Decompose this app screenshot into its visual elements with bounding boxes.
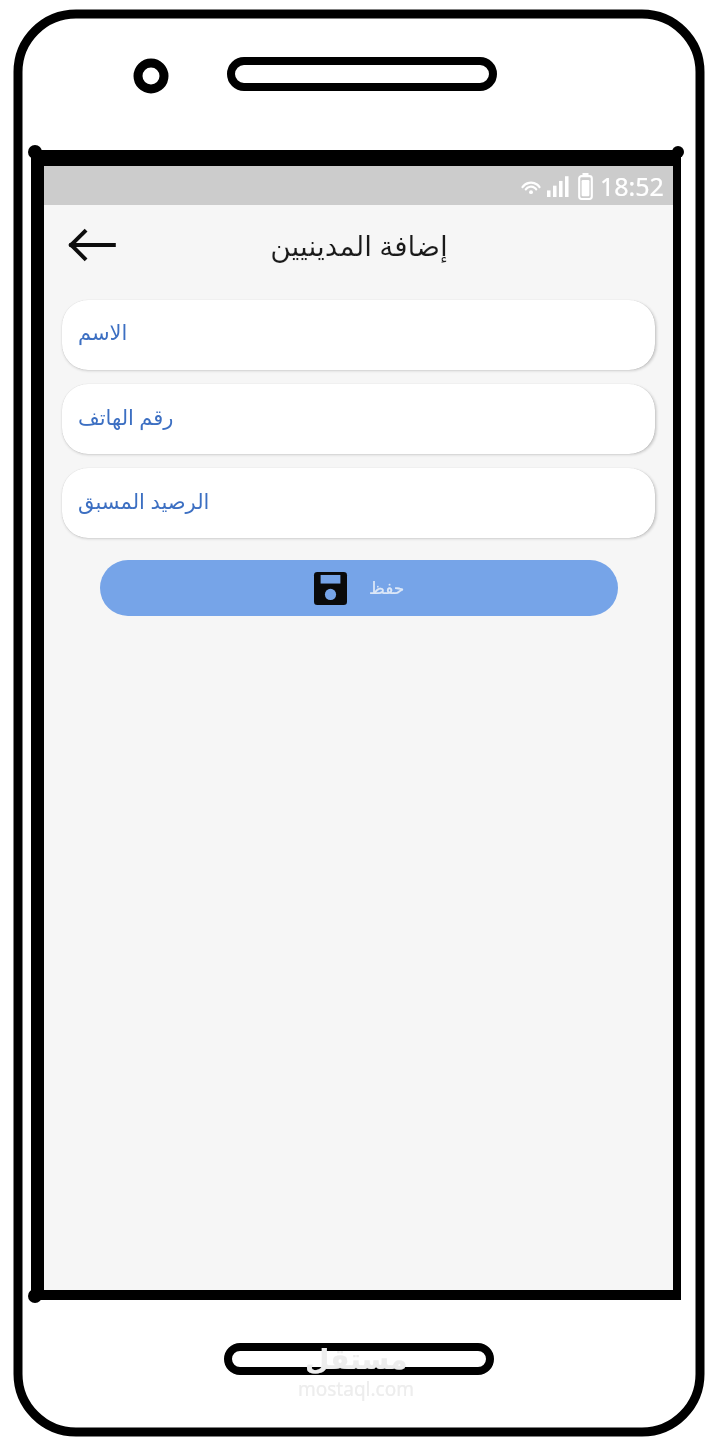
- staticText: 18:52: [600, 169, 664, 203]
- button[interactable]: الرصيد المسبق: [62, 468, 655, 538]
- staticText: الرصيد المسبق: [78, 487, 210, 516]
- staticText: مستقل: [305, 1343, 408, 1376]
- button[interactable]: حفظ: [100, 560, 618, 616]
- button[interactable]: رقم الهاتف: [62, 384, 655, 454]
- staticText: mostaql.com: [298, 1376, 414, 1402]
- staticText: الاسم: [78, 321, 128, 345]
- button[interactable]: الاسم: [62, 300, 655, 370]
- staticText: إضافة المدينيين: [270, 226, 448, 264]
- staticText: حفظ: [369, 578, 405, 598]
- button[interactable]: Back: [66, 219, 118, 271]
- staticText: رقم الهاتف: [78, 403, 174, 432]
